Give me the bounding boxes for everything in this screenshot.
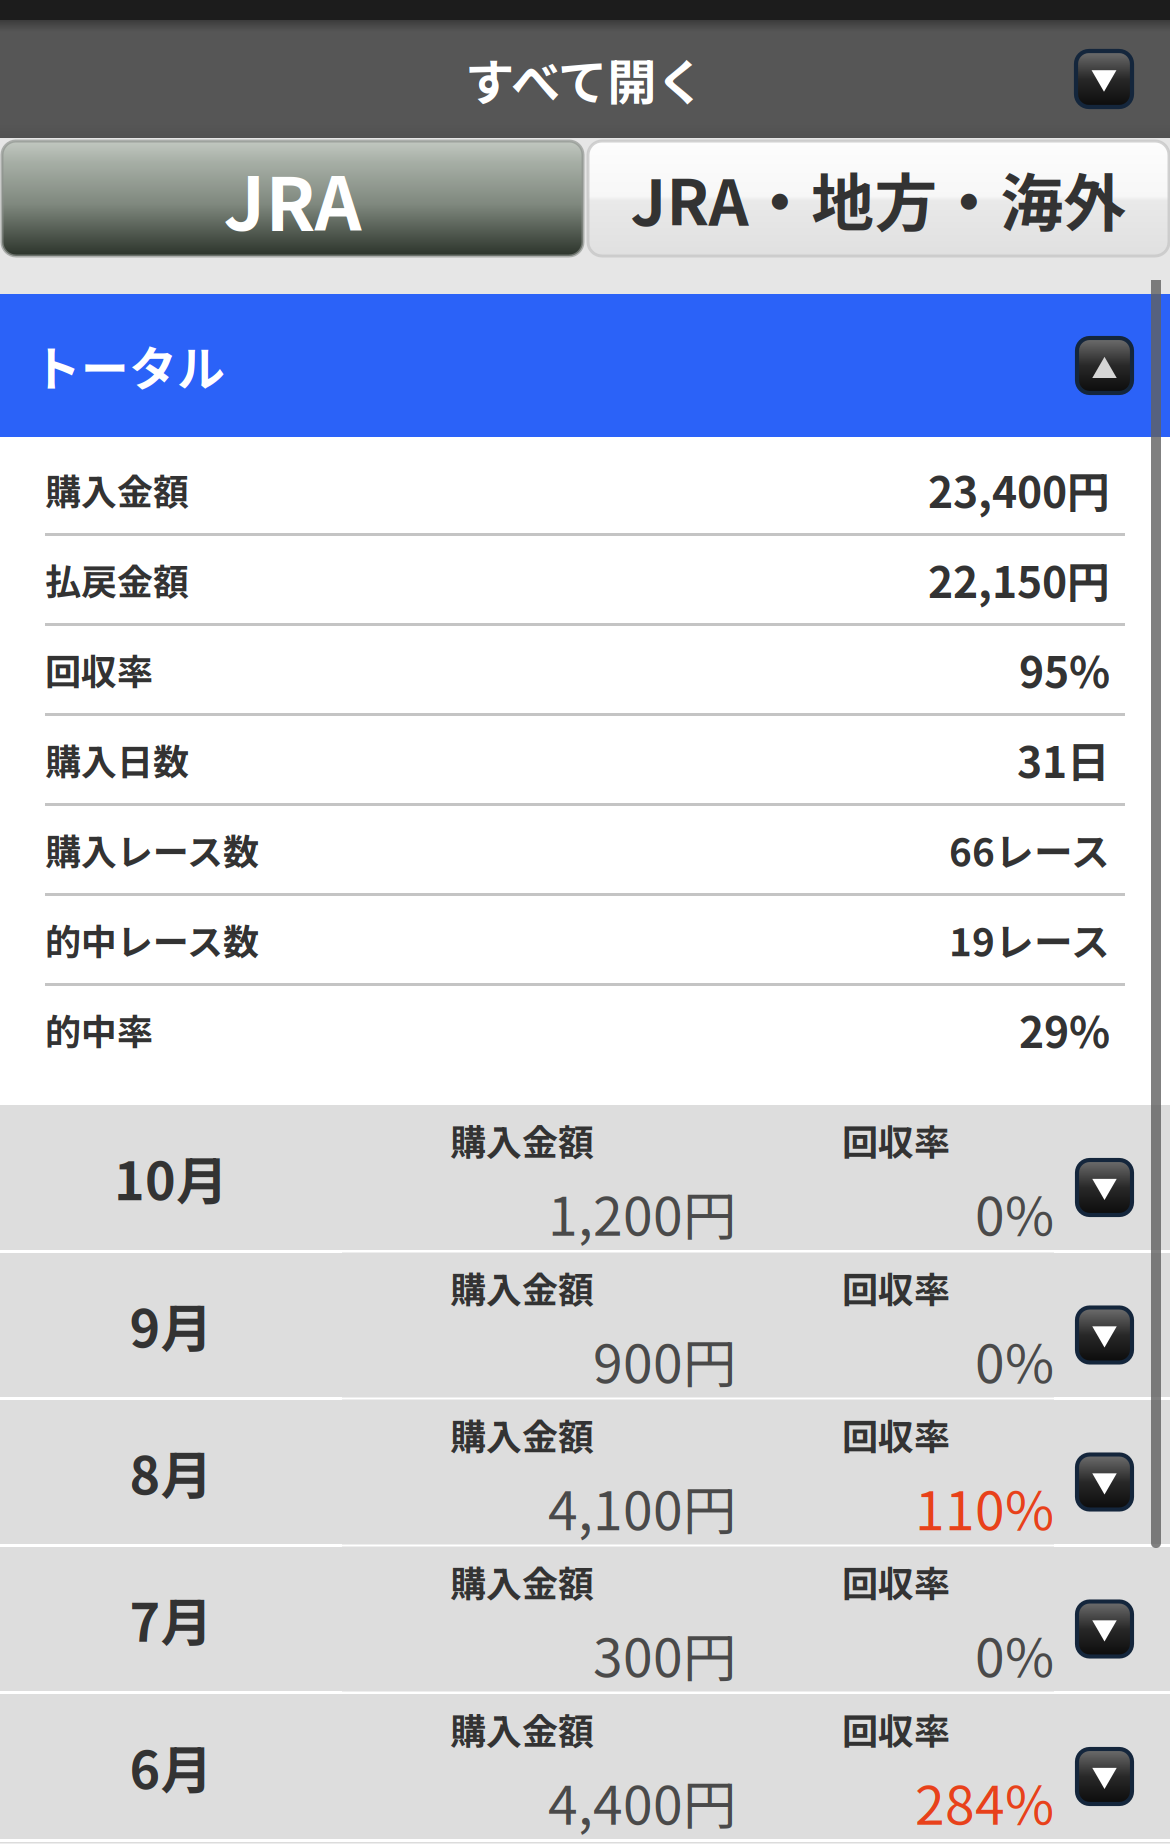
staticText: 的中率 bbox=[45, 1003, 153, 1055]
staticText: 110% bbox=[915, 1468, 1054, 1545]
button[interactable]: 9月 bbox=[0, 1253, 1170, 1397]
staticText: 購入金額 bbox=[450, 1703, 594, 1755]
staticText: 19レース bbox=[949, 911, 1110, 967]
staticText: 0% bbox=[975, 1321, 1054, 1398]
button[interactable]: 10月 bbox=[0, 1105, 1170, 1250]
button[interactable]: JRA bbox=[2, 141, 583, 256]
button[interactable]: 開く bbox=[1077, 1749, 1132, 1804]
button[interactable]: 開く bbox=[1077, 1307, 1132, 1362]
staticText: 7月 bbox=[129, 1581, 212, 1657]
button[interactable]: 開く bbox=[1076, 51, 1132, 107]
staticText: 29% bbox=[1019, 999, 1110, 1060]
staticText: 0% bbox=[975, 1615, 1054, 1692]
staticText: 購入金額 bbox=[450, 1555, 594, 1608]
staticText: 300円 bbox=[593, 1615, 736, 1692]
staticText: JRA bbox=[223, 145, 361, 252]
staticText: 4,100円 bbox=[548, 1468, 736, 1545]
staticText: 10月 bbox=[114, 1140, 228, 1215]
staticText: 回収率 bbox=[842, 1703, 950, 1755]
staticText: 回収率 bbox=[842, 1555, 950, 1608]
staticText: 1,200円 bbox=[548, 1174, 736, 1251]
staticText: 6月 bbox=[129, 1729, 212, 1804]
staticText: 4,400円 bbox=[548, 1763, 736, 1840]
staticText: 購入金額 bbox=[450, 1114, 594, 1166]
staticText: 0% bbox=[975, 1174, 1054, 1251]
staticText: 購入金額 bbox=[45, 463, 189, 515]
staticText: 回収率 bbox=[45, 643, 153, 695]
button[interactable]: トータル bbox=[0, 294, 1170, 437]
staticText: 23,400円 bbox=[928, 459, 1110, 520]
button[interactable]: 開く bbox=[1077, 1601, 1132, 1656]
staticText: 払戻金額 bbox=[45, 553, 189, 605]
staticText: 購入金額 bbox=[450, 1408, 594, 1461]
staticText: 購入日数 bbox=[45, 733, 189, 785]
staticText: 9月 bbox=[129, 1287, 212, 1363]
staticText: 購入金額 bbox=[450, 1261, 594, 1314]
staticText: 284% bbox=[915, 1763, 1054, 1840]
staticText: JRA・地方・海外 bbox=[630, 153, 1126, 244]
staticText: すべて開く bbox=[465, 43, 705, 115]
staticText: 回収率 bbox=[842, 1261, 950, 1314]
staticText: 22,150円 bbox=[928, 549, 1110, 610]
button[interactable]: JRA・地方・海外 bbox=[588, 141, 1169, 256]
staticText: 66レース bbox=[949, 821, 1110, 877]
button[interactable]: 開く bbox=[1077, 1160, 1132, 1215]
button[interactable]: 7月 bbox=[0, 1547, 1170, 1691]
staticText: 的中レース数 bbox=[45, 913, 259, 965]
button[interactable]: 開く bbox=[1077, 1454, 1132, 1509]
staticText: 回収率 bbox=[842, 1408, 950, 1461]
button[interactable]: 6月 bbox=[0, 1694, 1170, 1839]
staticText: トータル bbox=[33, 331, 225, 400]
button[interactable]: 8月 bbox=[0, 1400, 1170, 1544]
button[interactable]: 折りたたむ bbox=[1077, 338, 1132, 393]
staticText: 8月 bbox=[129, 1434, 212, 1510]
staticText: 購入レース数 bbox=[45, 823, 259, 875]
staticText: 95% bbox=[1019, 639, 1110, 700]
staticText: 回収率 bbox=[842, 1114, 950, 1166]
staticText: 31日 bbox=[1017, 729, 1110, 790]
staticText: 900円 bbox=[593, 1321, 736, 1398]
